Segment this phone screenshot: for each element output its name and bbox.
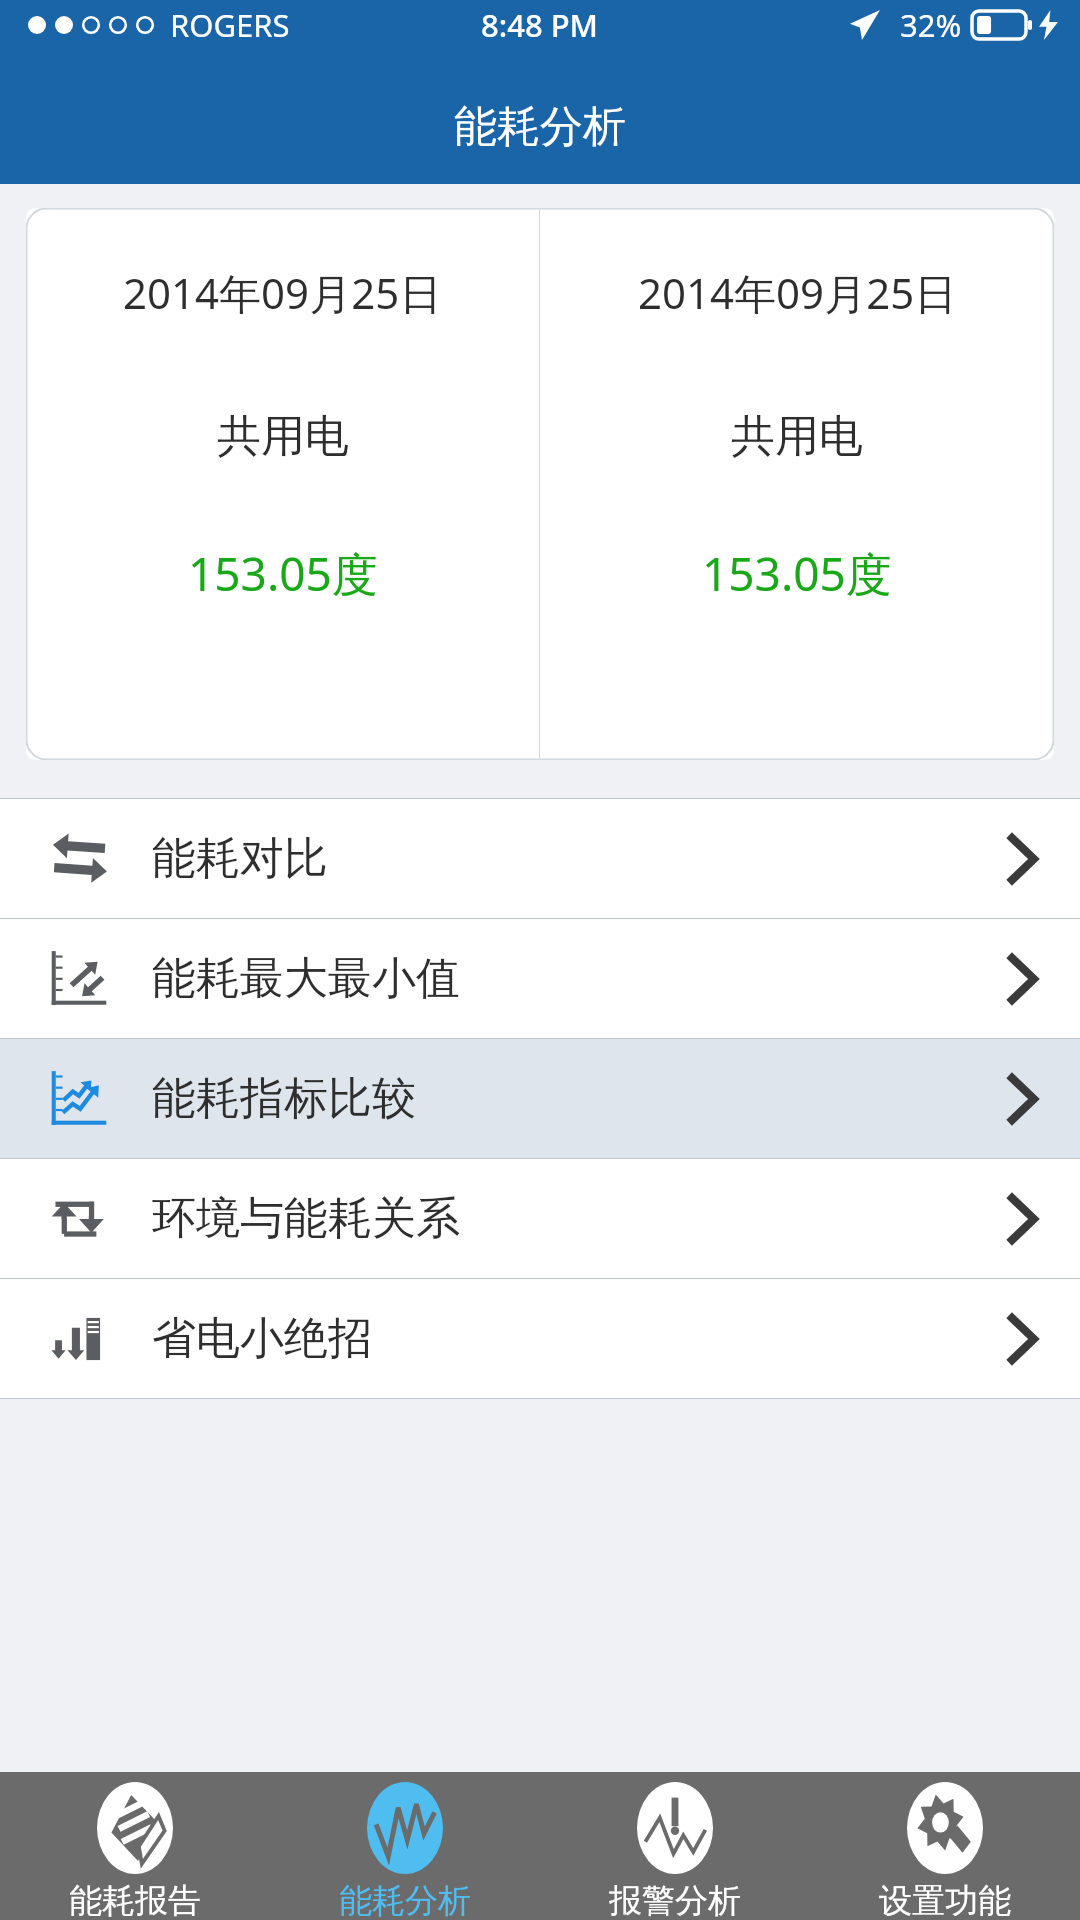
staticText: 2014年09月25日	[123, 264, 442, 321]
staticText: 能耗分析	[339, 1880, 471, 1920]
staticText: 能耗分析	[454, 100, 626, 154]
button[interactable]: 能耗报告	[0, 1772, 270, 1920]
staticText: 省电小绝招	[152, 1311, 372, 1366]
button[interactable]: 能耗指标比较	[0, 1039, 1080, 1158]
button[interactable]: 环境与能耗关系	[0, 1159, 1080, 1278]
button[interactable]: 能耗对比	[0, 799, 1080, 918]
button[interactable]: 设置功能	[810, 1772, 1080, 1920]
staticText: 能耗报告	[69, 1880, 201, 1920]
staticText: 设置功能	[879, 1880, 1011, 1920]
staticText: 能耗最大最小值	[152, 951, 460, 1006]
button[interactable]: 能耗分析	[270, 1772, 540, 1920]
button[interactable]: 报警分析	[540, 1772, 810, 1920]
staticText: 共用电	[217, 409, 349, 464]
button[interactable]: 省电小绝招	[0, 1279, 1080, 1398]
staticText: 能耗对比	[152, 831, 328, 886]
staticText: 153.05度	[188, 542, 378, 605]
staticText: 能耗指标比较	[152, 1071, 416, 1126]
staticText: 报警分析	[609, 1880, 741, 1920]
staticText: 环境与能耗关系	[152, 1191, 460, 1246]
staticText: 8:48 PM	[481, 4, 599, 46]
staticText: ROGERS	[170, 4, 290, 46]
staticText: 153.05度	[702, 542, 892, 605]
staticText: 2014年09月25日	[638, 264, 957, 321]
button[interactable]: 能耗最大最小值	[0, 919, 1080, 1038]
staticText: 32%	[900, 4, 962, 46]
staticText: 共用电	[731, 409, 863, 464]
